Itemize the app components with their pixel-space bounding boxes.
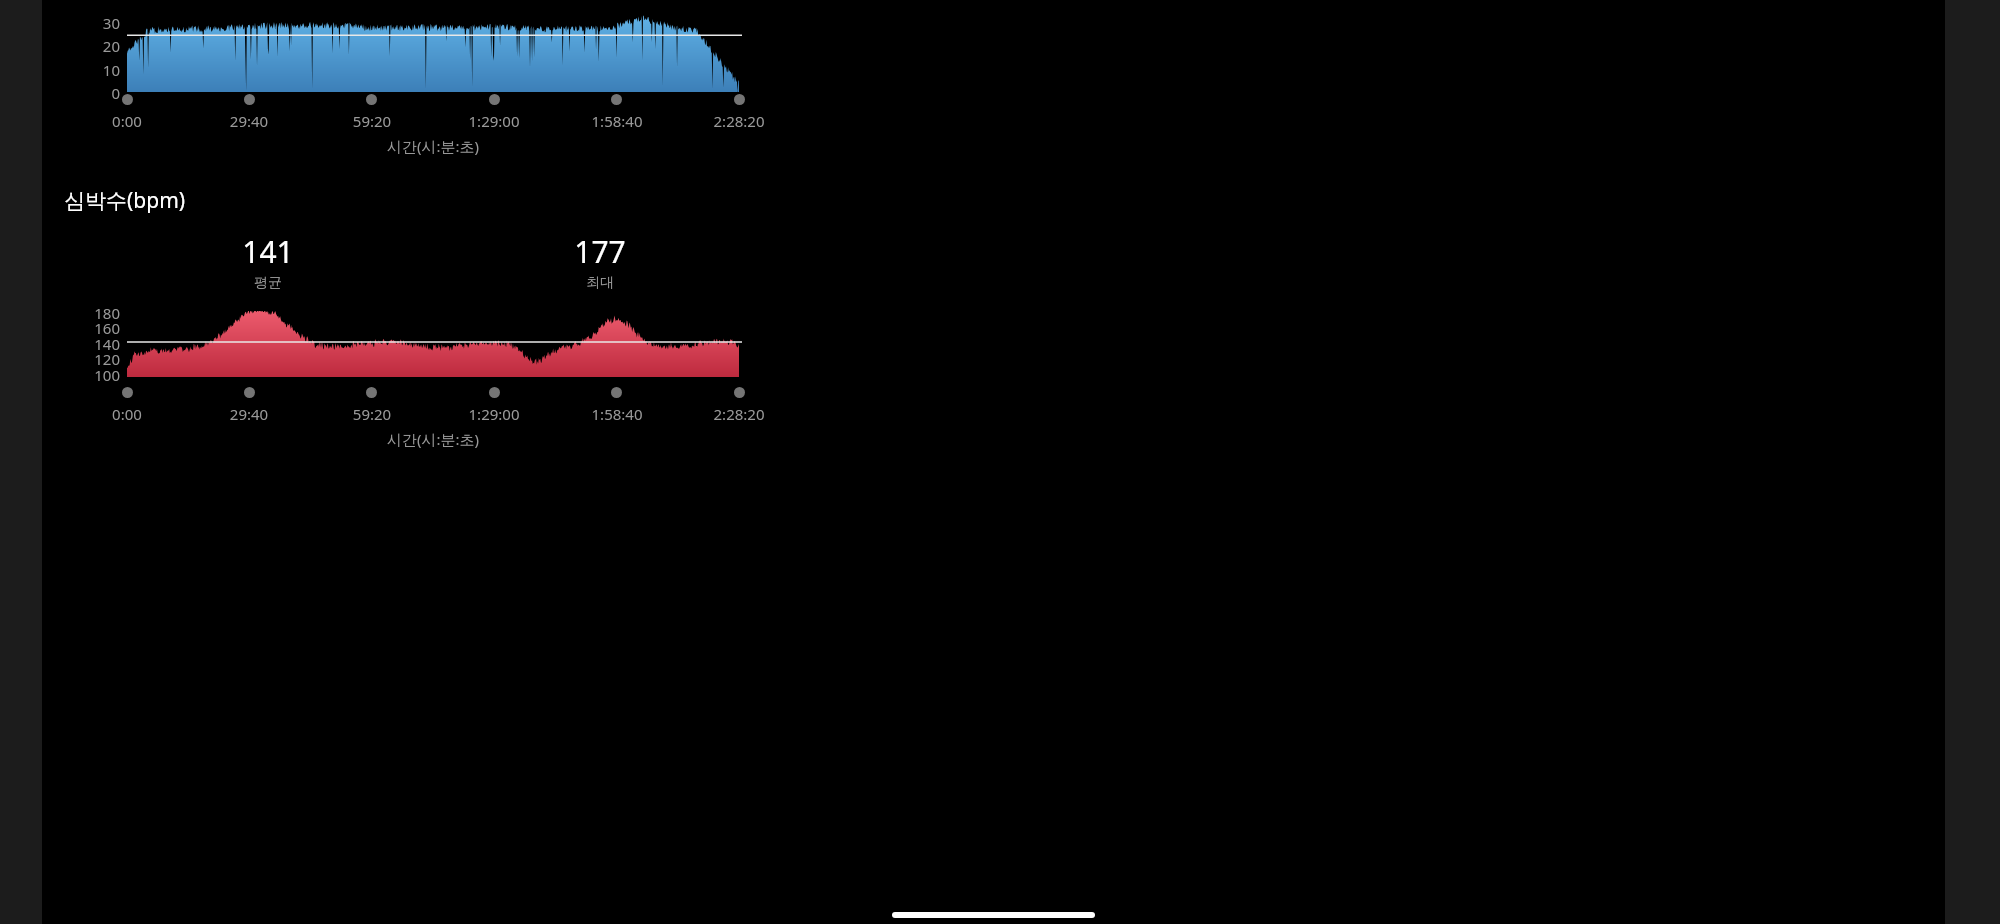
staticText: 0 xyxy=(64,83,120,103)
staticText: 0:00 xyxy=(67,404,187,424)
staticText: 10 xyxy=(64,60,120,80)
staticText: 100 xyxy=(56,365,120,385)
staticText: 최대 xyxy=(520,274,680,292)
staticText: 평균 xyxy=(188,274,348,292)
staticText: 180 xyxy=(56,303,120,323)
staticText: 시간(시:분:초) xyxy=(67,136,799,156)
staticText: 29:40 xyxy=(189,111,309,131)
button[interactable]: 141 xyxy=(188,231,348,292)
staticText: 140 xyxy=(56,334,120,354)
staticText: 2:28:20 xyxy=(679,404,799,424)
staticText: 120 xyxy=(56,349,120,369)
staticText: 59:20 xyxy=(312,111,432,131)
staticText: 시간(시:분:초) xyxy=(67,429,799,449)
button[interactable]: 177 xyxy=(520,231,680,292)
staticText: 160 xyxy=(56,318,120,338)
staticText: 177 xyxy=(520,231,680,272)
staticText: 1:29:00 xyxy=(434,404,554,424)
staticText: 20 xyxy=(64,36,120,56)
staticText: 1:58:40 xyxy=(557,404,677,424)
staticText: 141 xyxy=(188,231,348,272)
staticText: 1:58:40 xyxy=(557,111,677,131)
staticText: 1:29:00 xyxy=(434,111,554,131)
button[interactable]: 심박수(bpm) xyxy=(64,186,186,215)
staticText: 30 xyxy=(64,13,120,33)
staticText: 29:40 xyxy=(189,404,309,424)
staticText: 59:20 xyxy=(312,404,432,424)
staticText: 0:00 xyxy=(67,111,187,131)
staticText: 2:28:20 xyxy=(679,111,799,131)
